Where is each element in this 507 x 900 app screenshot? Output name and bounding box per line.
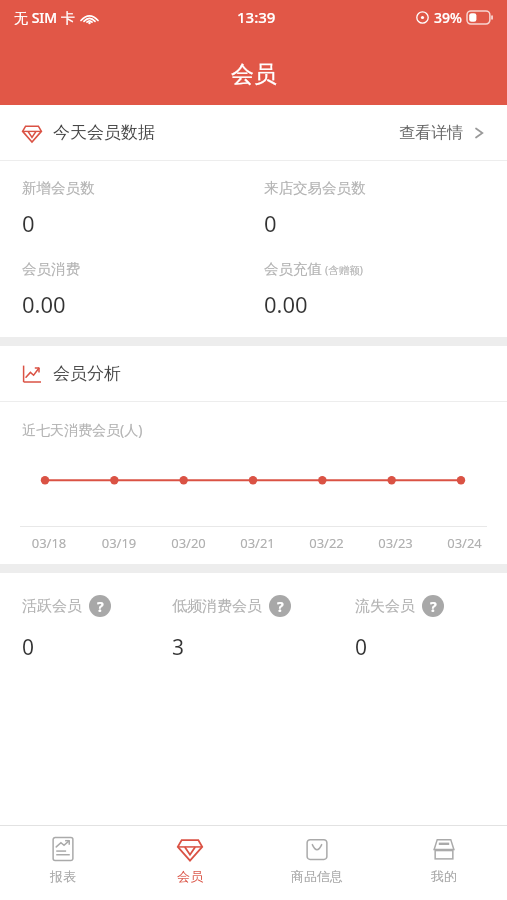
staticText: 今天会员数据 — [53, 122, 155, 143]
staticText: 0 — [355, 633, 368, 662]
button[interactable]: 会员 — [126, 826, 253, 900]
staticText: 0 — [264, 208, 277, 238]
staticText: 0 — [22, 208, 35, 238]
staticText: ? — [97, 597, 104, 616]
staticText: 无 SIM 卡 — [14, 8, 75, 27]
staticText: 低频消费会员 — [172, 597, 262, 616]
button[interactable]: 低频消费会员 — [166, 595, 349, 662]
staticText: 会员分析 — [53, 363, 121, 384]
button[interactable]: 商品信息 — [253, 826, 380, 900]
staticText: 近七天消费会员(人) — [22, 420, 143, 439]
staticText: 流失会员 — [355, 597, 415, 616]
staticText: 0.00 — [264, 289, 308, 319]
button[interactable]: 我的 — [380, 826, 507, 900]
other: Help 活跃会员 — [89, 595, 111, 617]
staticText: ? — [430, 597, 437, 616]
staticText: 报表 — [50, 868, 76, 884]
staticText: 查看详情 — [399, 123, 463, 143]
staticText: 会员 — [177, 868, 203, 884]
staticText: 0 — [22, 633, 35, 662]
button[interactable]: 报表 — [0, 826, 126, 900]
staticText: 活跃会员 — [22, 597, 82, 616]
staticText: 03/19 — [84, 534, 154, 552]
staticText: 新增会员数 — [22, 179, 95, 197]
staticText: 03/22 — [292, 534, 361, 552]
other: Help 流失会员 — [422, 595, 444, 617]
staticText: 03/23 — [361, 534, 430, 552]
staticText: 03/24 — [430, 534, 499, 552]
staticText: 会员消费 — [22, 260, 80, 278]
staticText: 来店交易会员数 — [264, 179, 366, 197]
staticText: 03/21 — [223, 534, 292, 552]
button[interactable]: 流失会员 — [349, 595, 507, 662]
staticText: 我的 — [431, 868, 457, 884]
staticText: 03/18 — [14, 534, 84, 552]
staticText: ? — [277, 597, 284, 616]
staticText: 13:39 — [237, 7, 276, 27]
staticText: 商品信息 — [291, 868, 343, 884]
staticText: 03/20 — [154, 534, 223, 552]
staticText: 3 — [172, 633, 185, 662]
staticText: 会员充值 — [264, 260, 322, 278]
staticText: 0.00 — [22, 289, 66, 319]
staticText: 会员 — [231, 60, 277, 89]
staticText: (含赠额) — [325, 263, 363, 277]
button[interactable]: 今天会员数据 — [0, 105, 507, 160]
other: Help 低频消费会员 — [269, 595, 291, 617]
button[interactable]: 会员分析 — [0, 346, 507, 401]
staticText: 39% — [434, 8, 462, 27]
button[interactable]: 活跃会员 — [0, 595, 166, 662]
